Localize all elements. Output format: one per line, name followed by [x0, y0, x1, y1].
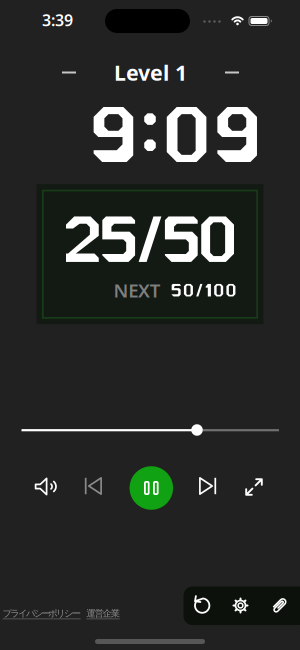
button[interactable]: Attach	[262, 586, 296, 624]
button[interactable]: Next	[189, 468, 225, 504]
button[interactable]: Pause	[130, 466, 173, 510]
staticText: NEXT	[114, 278, 161, 303]
button[interactable]: Previous	[75, 468, 111, 504]
button[interactable]: Reset	[185, 586, 219, 624]
button[interactable]: Settings	[223, 586, 257, 624]
button[interactable]: Mute	[29, 468, 65, 504]
button[interactable]: プライバシーポリシー	[2, 608, 81, 619]
staticText: 3:39	[42, 9, 73, 31]
staticText: Level 1	[114, 58, 187, 87]
button[interactable]: 運営企業	[86, 608, 120, 619]
staticText: プライバシーポリシー	[2, 608, 81, 619]
staticText: 運営企業	[86, 608, 120, 619]
button[interactable]: Fullscreen	[236, 469, 272, 505]
